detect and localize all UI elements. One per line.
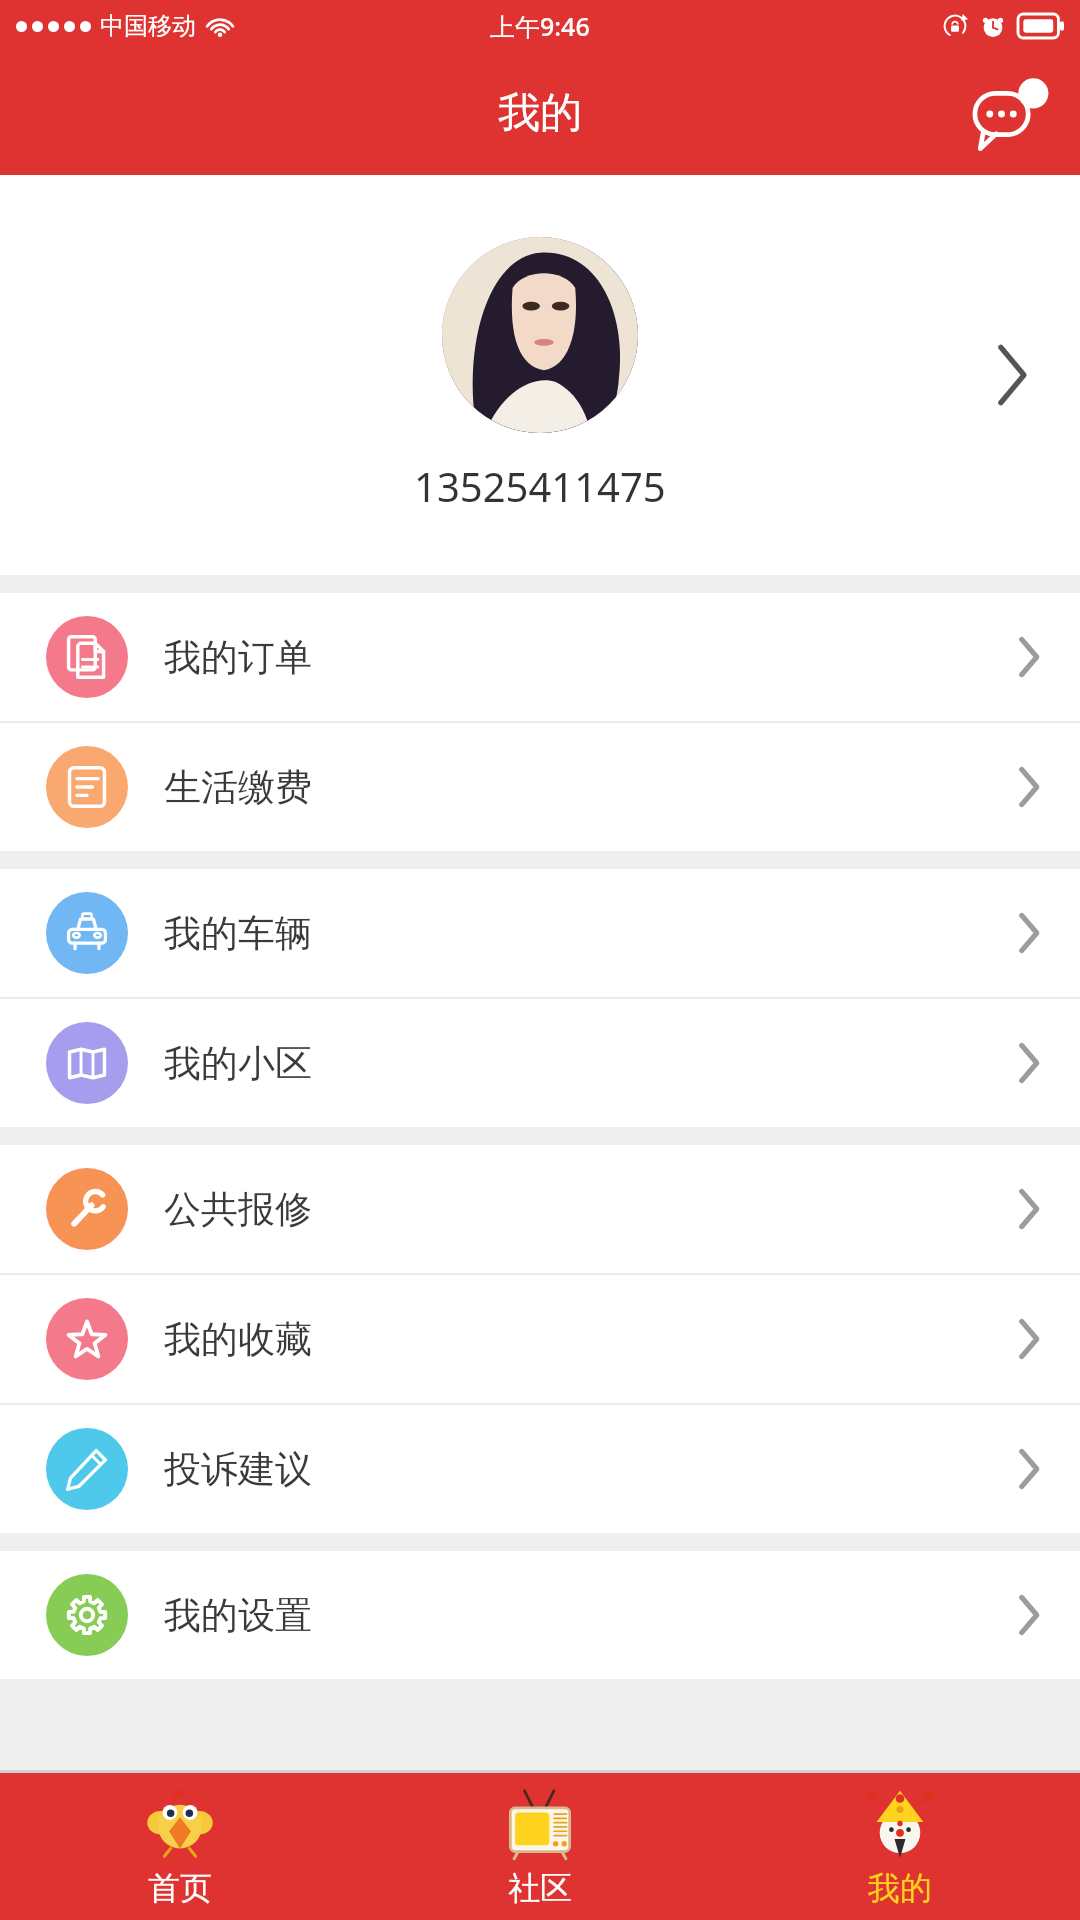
button[interactable]: 我的 [720,1773,1080,1920]
staticText: 我的小区 [164,1040,312,1087]
staticText: 我的 [868,1868,932,1908]
staticText: 我的订单 [164,634,312,681]
button[interactable]: 公共报修 [0,1145,1080,1273]
button[interactable]: 13525411475 [0,175,1080,575]
staticText: 我的设置 [164,1592,312,1639]
button[interactable]: 我的车辆 [0,869,1080,997]
staticText: 公共报修 [164,1186,312,1233]
button[interactable]: 首页 [0,1773,360,1920]
staticText: 社区 [508,1868,572,1908]
button[interactable]: Messages, 1 unread [968,71,1054,157]
staticText: 上午9:46 [490,9,590,43]
button[interactable]: 投诉建议 [0,1405,1080,1533]
button[interactable]: 我的小区 [0,999,1080,1127]
staticText: 13525411475 [414,459,666,513]
button[interactable]: 我的订单 [0,593,1080,721]
staticText: 我的收藏 [164,1316,312,1363]
button[interactable]: 我的收藏 [0,1275,1080,1403]
staticText: 生活缴费 [164,764,312,811]
button[interactable]: 社区 [360,1773,720,1920]
staticText: 首页 [148,1868,212,1908]
staticText: 投诉建议 [164,1446,312,1493]
staticText: 我的 [498,87,582,140]
button[interactable]: 我的设置 [0,1551,1080,1679]
staticText: 我的车辆 [164,910,312,957]
button[interactable]: 生活缴费 [0,723,1080,851]
staticText: 中国移动 [100,11,196,41]
